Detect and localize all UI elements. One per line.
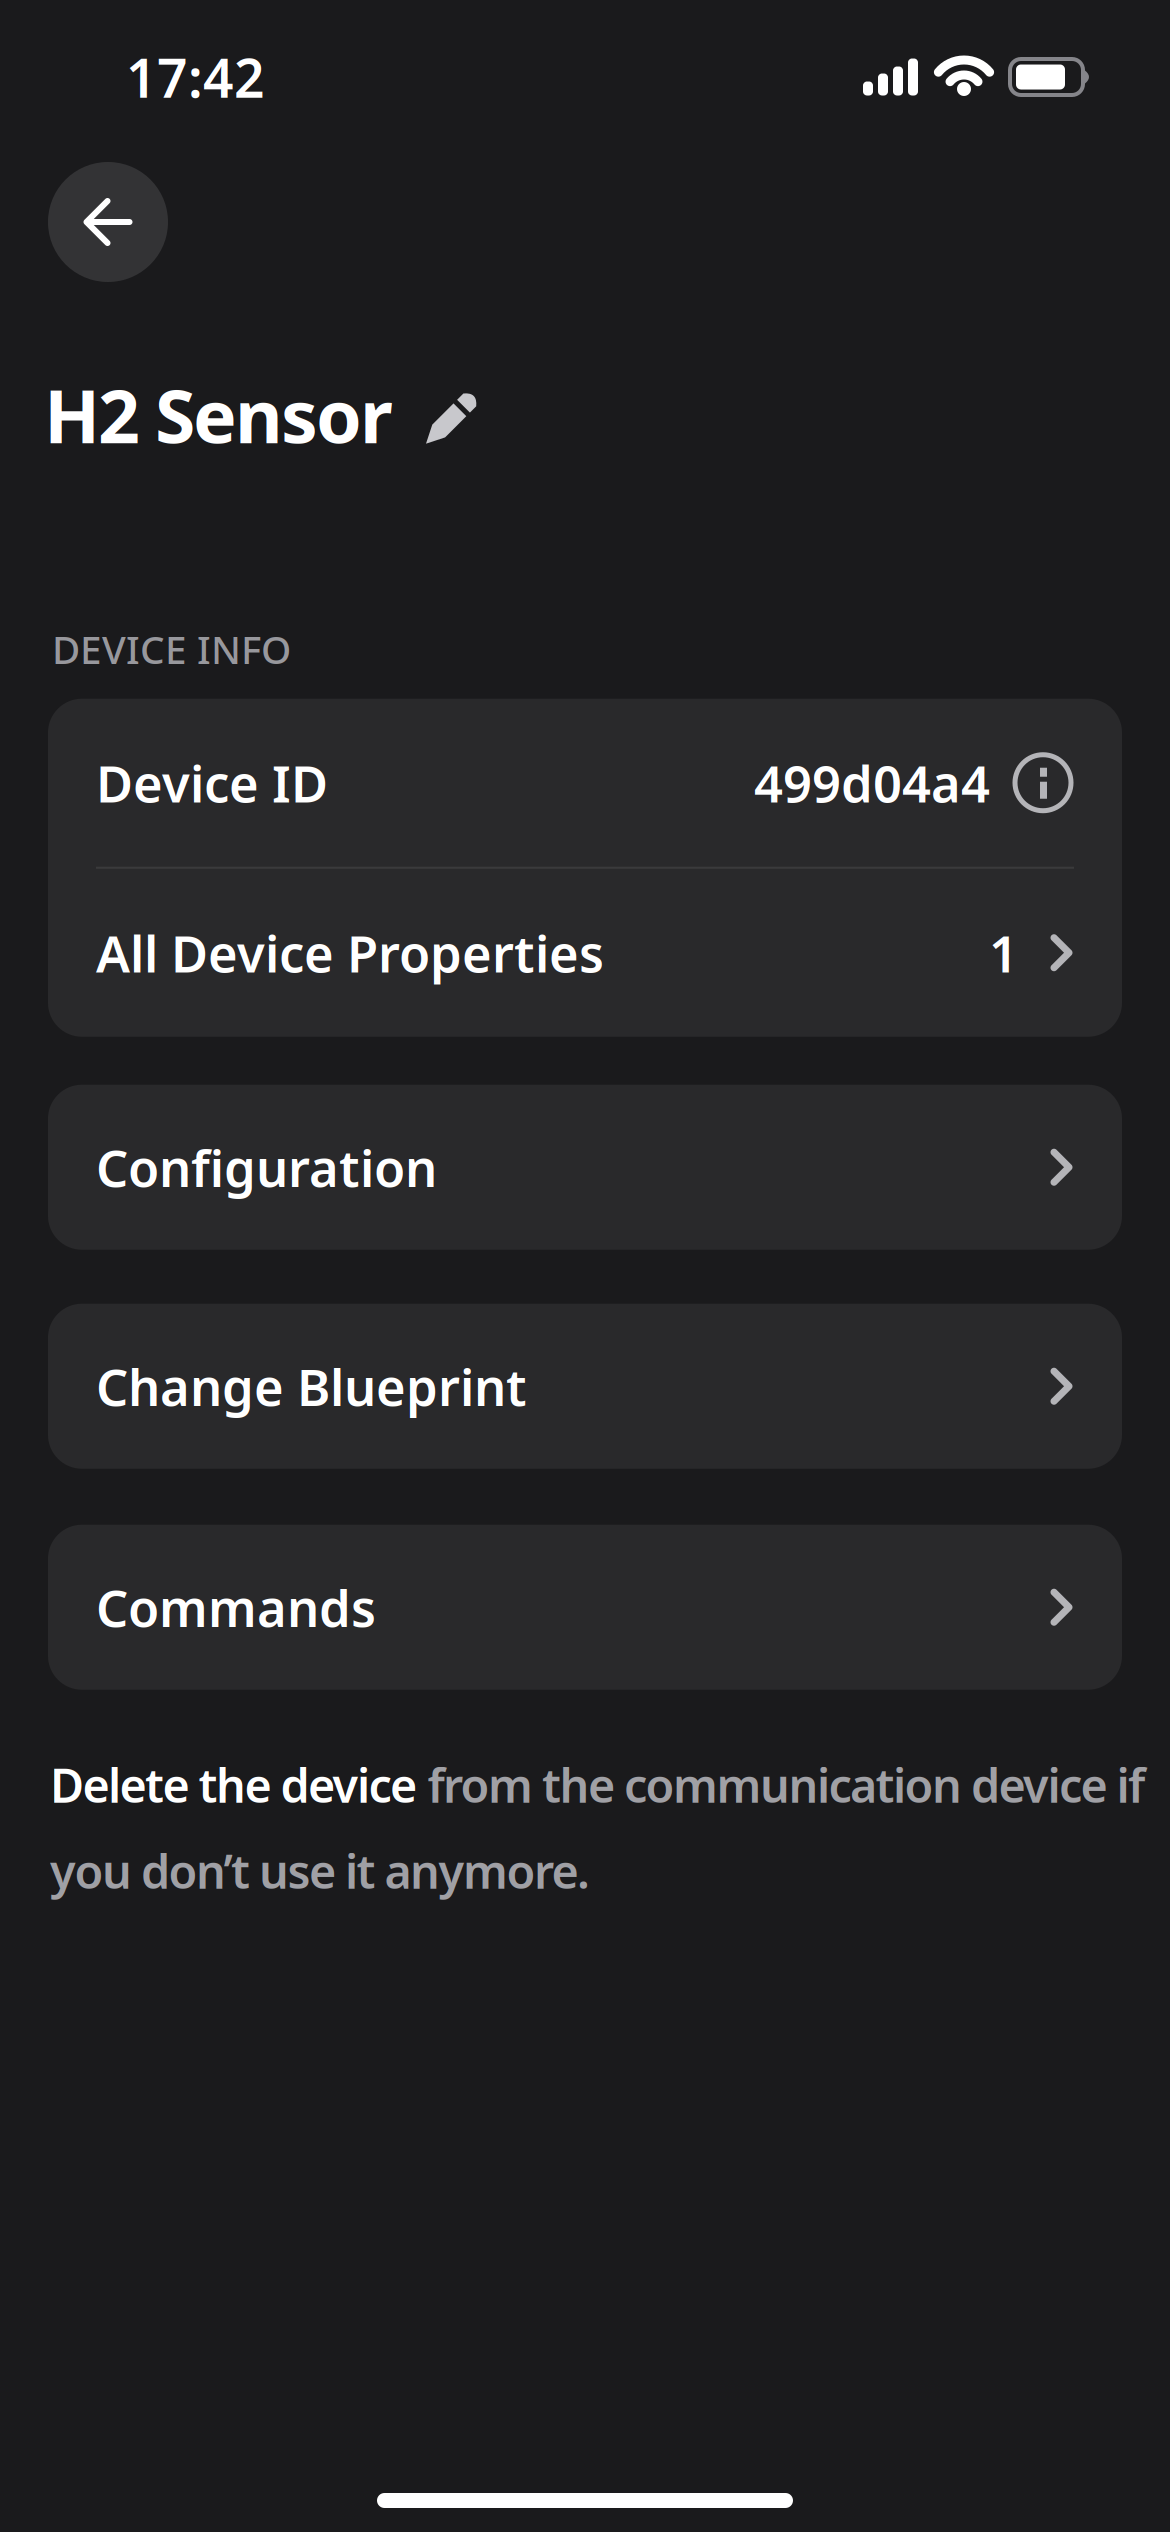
staticText: All Device Properties [96,919,604,986]
button[interactable]: All Device Properties [48,869,1122,1037]
staticText: Commands [96,1574,376,1641]
staticText: you don’t use it anymore. [50,1840,590,1902]
button[interactable]: Change Blueprint [48,1304,1122,1469]
button[interactable]: Commands [48,1525,1122,1690]
staticText: 1 [989,919,1018,986]
button[interactable]: Back [48,162,168,282]
staticText: 17:42 [126,42,265,112]
staticText: H2 Sensor [44,366,393,463]
staticText: from the communication device if [417,1754,1145,1816]
staticText: 499d04a4 [754,749,990,816]
staticText: Device ID [96,749,328,816]
button[interactable]: Configuration [48,1085,1122,1250]
staticText: Change Blueprint [96,1353,527,1420]
staticText: DEVICE INFO [52,623,291,675]
staticText: Delete the device [50,1754,417,1816]
button[interactable]: Edit name [44,366,481,463]
staticText: Configuration [96,1134,437,1201]
button[interactable]: Device ID info [48,699,1122,867]
